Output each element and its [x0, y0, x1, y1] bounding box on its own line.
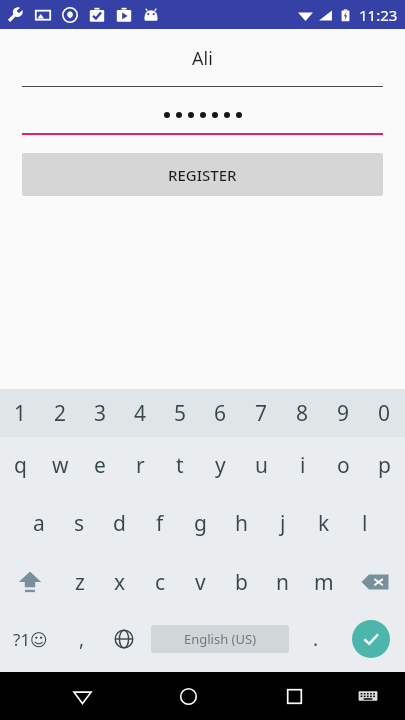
button[interactable]: 9: [323, 389, 364, 437]
staticText: g: [194, 509, 207, 538]
button[interactable]: v: [180, 553, 221, 611]
button[interactable]: Ali: [22, 29, 383, 87]
button[interactable]: z: [60, 553, 100, 611]
staticText: 5: [174, 399, 187, 428]
button[interactable]: u: [241, 437, 282, 493]
button[interactable]: 6: [200, 389, 241, 437]
staticText: s: [74, 509, 85, 538]
button[interactable]: Change language: [103, 611, 145, 667]
staticText: q: [14, 451, 27, 480]
staticText: c: [155, 568, 166, 597]
staticText: 8: [296, 399, 309, 428]
staticText: o: [337, 451, 350, 480]
button[interactable]: ,: [61, 611, 103, 667]
button[interactable]: i: [282, 437, 323, 493]
button[interactable]: g: [180, 493, 221, 553]
staticText: ?1☺: [13, 628, 48, 651]
button[interactable]: d: [99, 493, 139, 553]
staticText: 11:23: [359, 5, 398, 25]
staticText: p: [378, 451, 391, 480]
button[interactable]: Shift: [0, 553, 60, 611]
button[interactable]: 5: [160, 389, 200, 437]
staticText: .: [313, 626, 319, 652]
button[interactable]: 2: [40, 389, 80, 437]
staticText: 1: [14, 399, 27, 428]
button[interactable]: y: [200, 437, 241, 493]
button[interactable]: k: [303, 493, 344, 553]
staticText: REGISTER: [168, 165, 237, 185]
button[interactable]: q: [0, 437, 40, 493]
button[interactable]: ?1☺: [0, 611, 61, 667]
staticText: 6: [214, 399, 227, 428]
button[interactable]: p: [364, 437, 405, 493]
staticText: x: [114, 568, 126, 597]
button[interactable]: l: [344, 493, 385, 553]
button[interactable]: h: [221, 493, 262, 553]
staticText: v: [195, 568, 206, 597]
button[interactable]: [22, 87, 383, 135]
button[interactable]: s: [59, 493, 99, 553]
staticText: 7: [255, 399, 268, 428]
button[interactable]: Hide keyboard: [348, 676, 388, 716]
button[interactable]: 4: [120, 389, 160, 437]
button[interactable]: 7: [241, 389, 282, 437]
staticText: b: [235, 568, 248, 597]
button[interactable]: REGISTER: [22, 153, 383, 196]
button[interactable]: 0: [364, 389, 405, 437]
button[interactable]: b: [221, 553, 262, 611]
button[interactable]: Home: [165, 673, 211, 719]
button[interactable]: .: [295, 611, 337, 667]
button[interactable]: Backspace: [344, 553, 405, 611]
button[interactable]: 1: [0, 389, 40, 437]
staticText: Ali: [192, 46, 213, 71]
button[interactable]: m: [303, 553, 344, 611]
staticText: w: [52, 451, 69, 480]
button[interactable]: c: [140, 553, 180, 611]
staticText: ,: [79, 626, 85, 652]
button[interactable]: Back: [59, 673, 105, 719]
button[interactable]: r: [120, 437, 160, 493]
staticText: k: [318, 509, 330, 538]
staticText: j: [280, 509, 286, 538]
staticText: l: [362, 509, 368, 538]
button[interactable]: t: [160, 437, 200, 493]
staticText: m: [314, 568, 334, 597]
staticText: English (US): [184, 630, 257, 648]
button[interactable]: w: [40, 437, 80, 493]
staticText: 9: [337, 399, 350, 428]
button[interactable]: a: [19, 493, 59, 553]
staticText: 4: [134, 399, 147, 428]
staticText: i: [300, 451, 306, 480]
staticText: d: [113, 509, 126, 538]
staticText: t: [176, 451, 184, 480]
staticText: y: [215, 451, 226, 480]
staticText: a: [33, 509, 45, 538]
staticText: 3: [94, 399, 107, 428]
staticText: u: [255, 451, 268, 480]
staticText: 2: [54, 399, 67, 428]
staticText: f: [156, 509, 164, 538]
staticText: e: [94, 451, 106, 480]
button[interactable]: x: [100, 553, 140, 611]
button[interactable]: o: [323, 437, 364, 493]
button[interactable]: Enter: [337, 611, 405, 667]
button[interactable]: English (US): [151, 625, 289, 653]
button[interactable]: j: [262, 493, 303, 553]
button[interactable]: 3: [80, 389, 120, 437]
staticText: 0: [378, 399, 391, 428]
staticText: r: [136, 451, 145, 480]
staticText: h: [235, 509, 248, 538]
staticText: n: [276, 568, 289, 597]
button[interactable]: n: [262, 553, 303, 611]
button[interactable]: Recents: [271, 673, 317, 719]
button[interactable]: 8: [282, 389, 323, 437]
staticText: z: [75, 568, 85, 597]
button[interactable]: f: [139, 493, 180, 553]
button[interactable]: e: [80, 437, 120, 493]
